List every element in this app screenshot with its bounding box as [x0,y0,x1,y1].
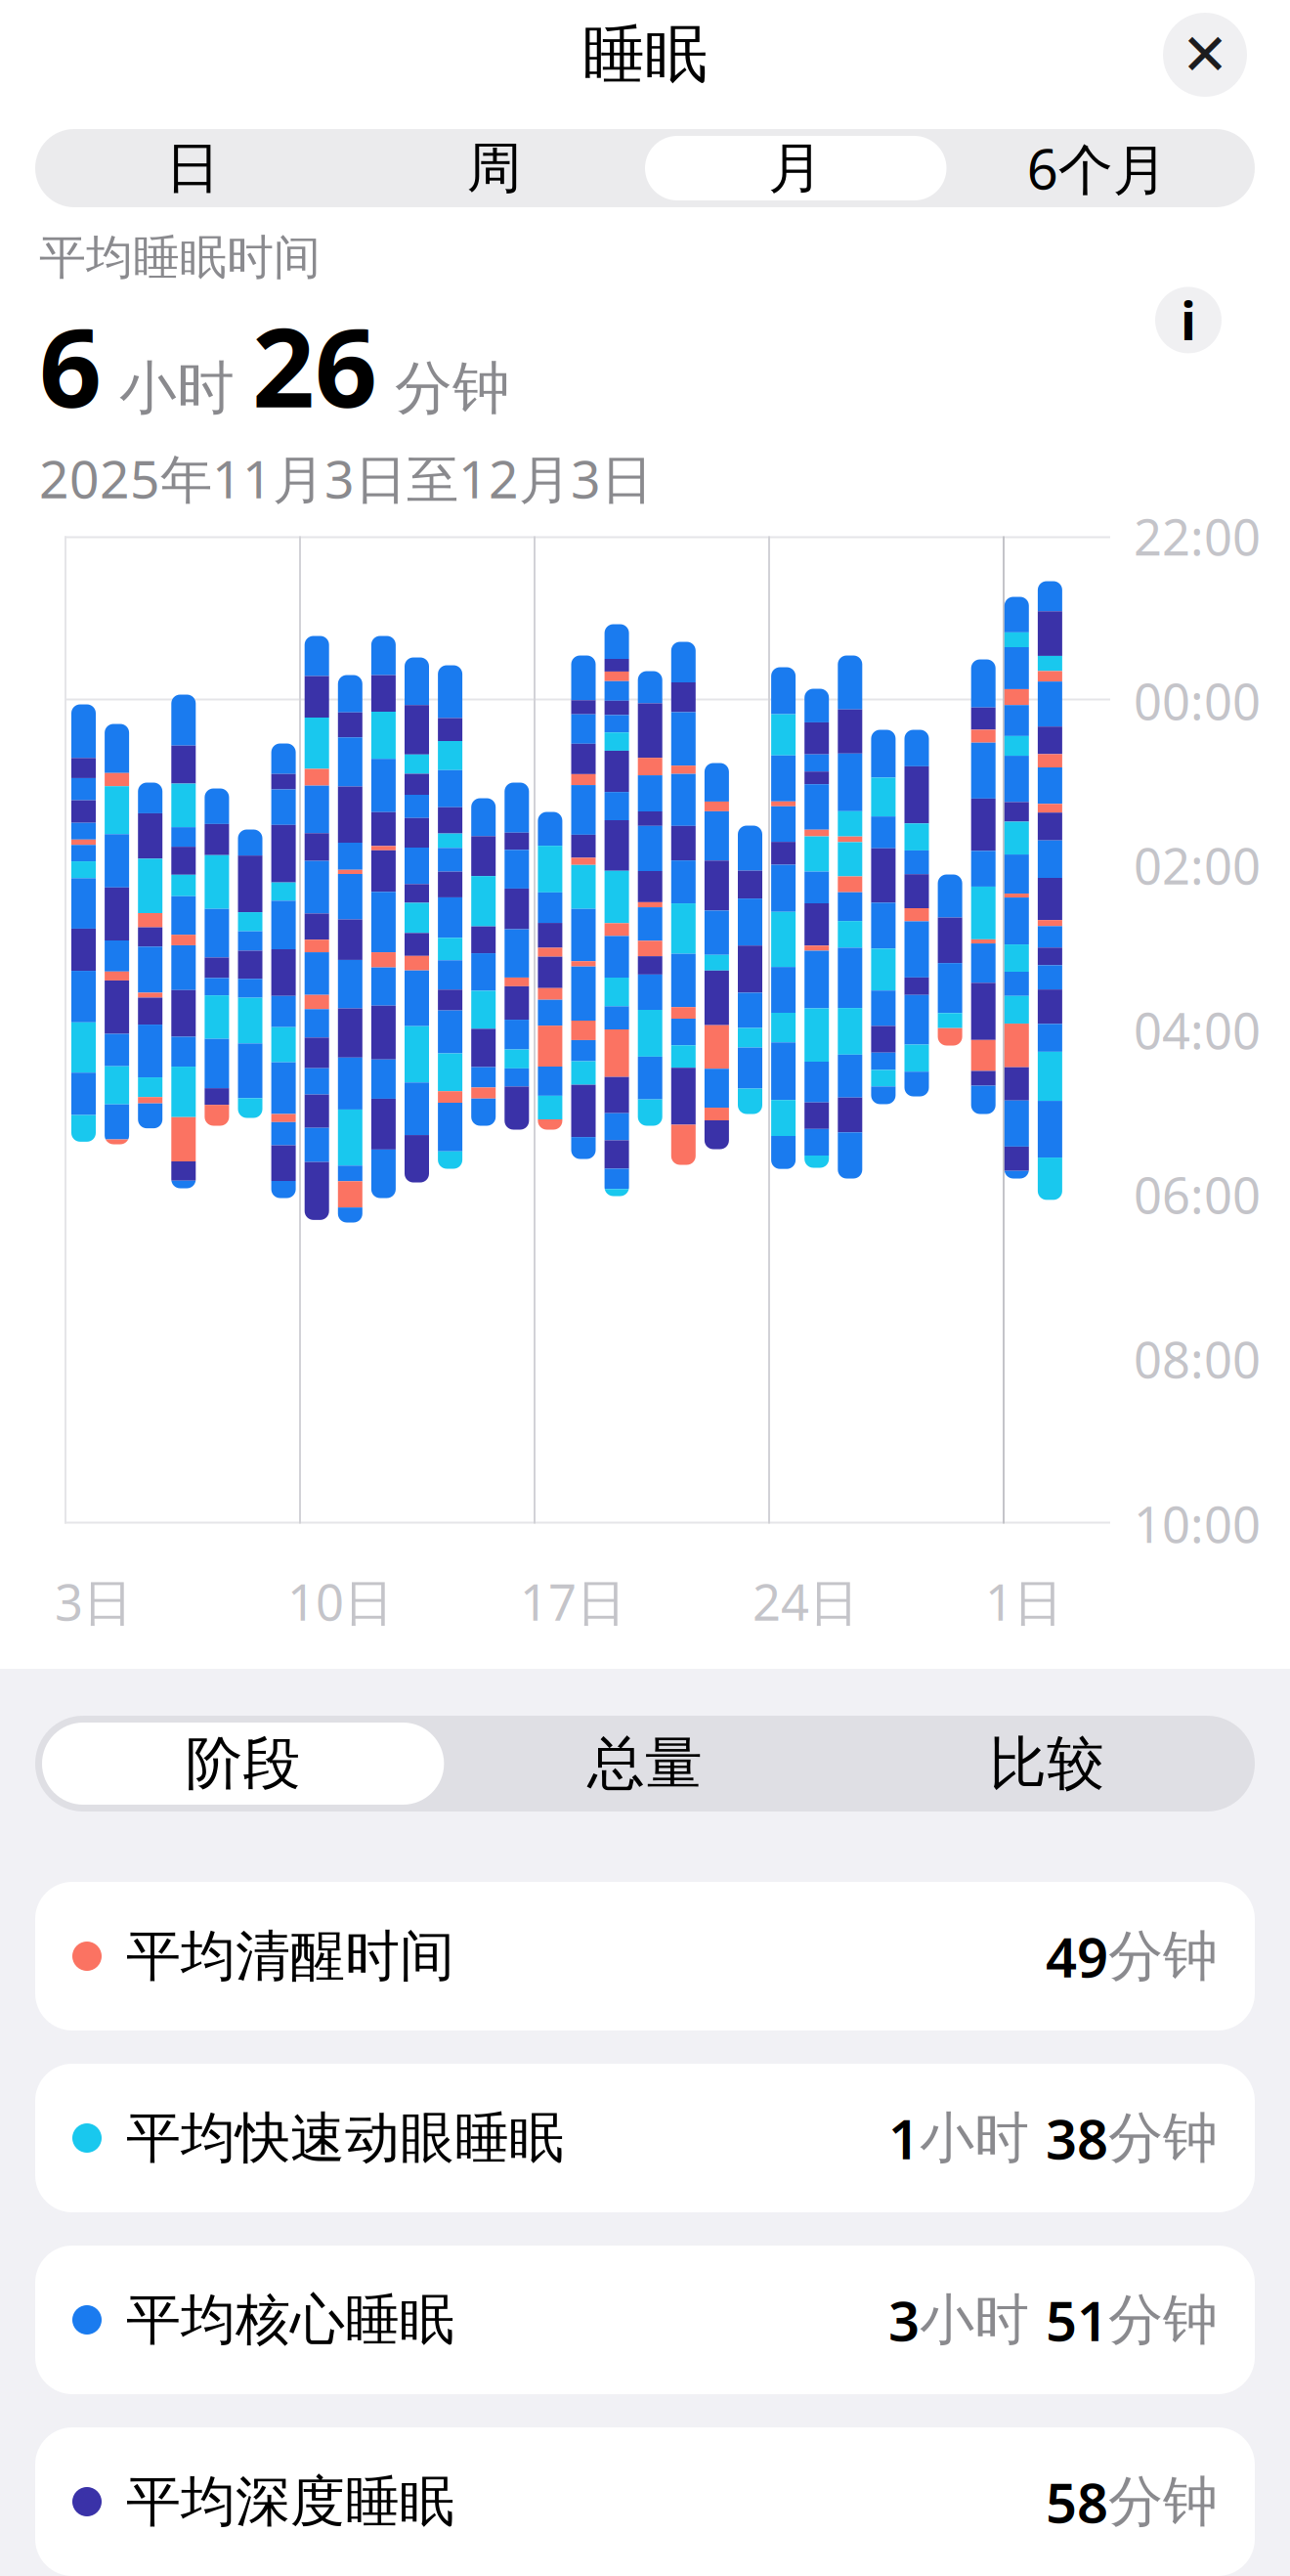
button[interactable]: 平均清醒时间 [35,1882,1255,2030]
staticText: 平均快速动眼睡眠 [126,2104,564,2172]
button[interactable]: 阶段 [42,1723,444,1805]
button[interactable]: 关闭 [1163,13,1247,97]
staticText: 49 [1046,1920,1108,1993]
staticText: 阶段 [185,1728,301,1799]
staticText: 08:00 [1134,1326,1261,1392]
button[interactable]: 总量 [444,1723,846,1805]
button[interactable]: 比较 [846,1723,1248,1805]
staticText: 分钟 [377,353,510,424]
staticText: 26 [252,292,377,438]
staticText: 10:00 [1134,1491,1261,1557]
staticText: 02:00 [1134,832,1261,898]
staticText: 00:00 [1134,668,1261,734]
staticText: 比较 [989,1728,1105,1799]
staticText: 1日 [985,1569,1063,1634]
staticText: 睡眠 [582,16,708,93]
staticText: 17日 [520,1569,626,1634]
staticText: 51 [1046,2283,1108,2356]
button[interactable]: 平均核心睡眠 [35,2246,1255,2394]
staticText: 周 [467,135,522,202]
staticText: 6 [39,292,102,438]
staticText: 3 [888,2283,920,2356]
staticText: 分钟 [1108,1923,1218,1990]
staticText: 平均清醒时间 [126,1923,454,1990]
staticText: 小时 [102,353,252,424]
staticText: 月 [768,135,823,202]
button[interactable]: 日 [42,136,344,200]
staticText: 分钟 [1108,2104,1218,2172]
staticText: 04:00 [1134,997,1261,1063]
staticText: 2025年11月3日至12月3日 [39,444,653,513]
staticText: 1 [888,2102,920,2174]
staticText: 6个月 [1027,132,1168,205]
staticText: 58 [1046,2465,1108,2538]
button[interactable]: 平均深度睡眠 [35,2427,1255,2576]
staticText: 24日 [752,1569,859,1634]
button[interactable]: 信息 [1155,285,1222,355]
staticText: 平均深度睡眠 [126,2468,454,2535]
staticText: ✕ [1181,22,1229,87]
staticText: i [1181,285,1196,355]
staticText: 38 [1046,2102,1108,2174]
staticText: 小时 [920,2104,1046,2172]
staticText: 总量 [587,1728,703,1799]
button[interactable]: 周 [344,136,645,200]
staticText: 小时 [920,2286,1046,2353]
button[interactable]: 6个月 [946,136,1248,200]
staticText: 分钟 [1108,2286,1218,2353]
staticText: 10日 [287,1569,394,1634]
staticText: 平均核心睡眠 [126,2286,454,2353]
button[interactable]: 月 [645,136,946,200]
staticText: 06:00 [1134,1162,1261,1227]
staticText: 平均睡眠时间 [39,229,321,286]
staticText: 22:00 [1134,503,1261,569]
staticText: 日 [165,135,220,202]
staticText: 分钟 [1108,2468,1218,2535]
button[interactable]: 平均快速动眼睡眠 [35,2064,1255,2212]
staticText: 3日 [55,1569,133,1634]
